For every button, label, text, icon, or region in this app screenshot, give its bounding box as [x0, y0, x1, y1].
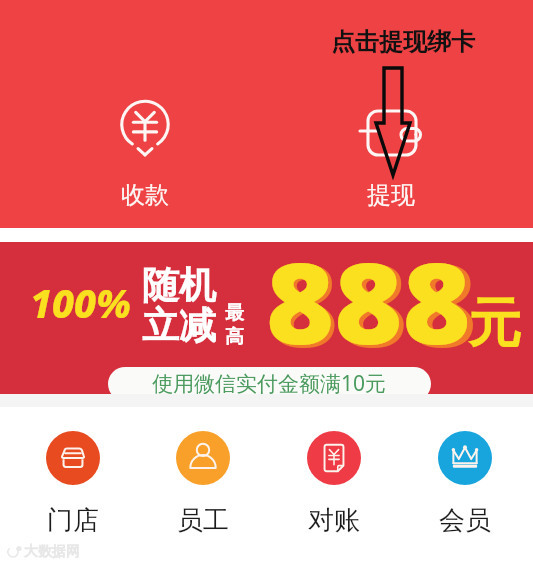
staticText: 提现 — [367, 180, 415, 210]
staticText: 会员 — [439, 504, 491, 537]
staticText: 员工 — [177, 504, 229, 537]
other: 收款 — [116, 100, 174, 158]
button[interactable]: 收款 — [95, 100, 195, 210]
staticText: 元 — [468, 290, 521, 357]
staticText: 随机 — [142, 262, 216, 309]
staticText: 使用微信实付金额满10元 — [152, 369, 387, 394]
button[interactable]: 会员 — [419, 431, 511, 537]
staticText: 对账 — [308, 504, 360, 537]
staticText: 最 — [225, 301, 244, 325]
staticText: 立减 — [142, 302, 216, 349]
staticText: 点击提现绑卡 — [331, 27, 475, 57]
other: 提现 — [362, 100, 420, 158]
button[interactable]: 提现 — [341, 100, 441, 210]
staticText: 888 — [269, 242, 477, 380]
staticText: 收款 — [121, 180, 169, 210]
staticText: 大数据网 — [24, 543, 80, 561]
button[interactable]: 对账 — [288, 431, 380, 537]
button[interactable]: 门店 — [27, 431, 119, 537]
button[interactable]: 员工 — [157, 431, 249, 537]
staticText: 高 — [225, 325, 244, 349]
staticText: 门店 — [47, 504, 99, 537]
staticText: 888 — [266, 242, 471, 376]
staticText: 100% — [30, 276, 131, 329]
